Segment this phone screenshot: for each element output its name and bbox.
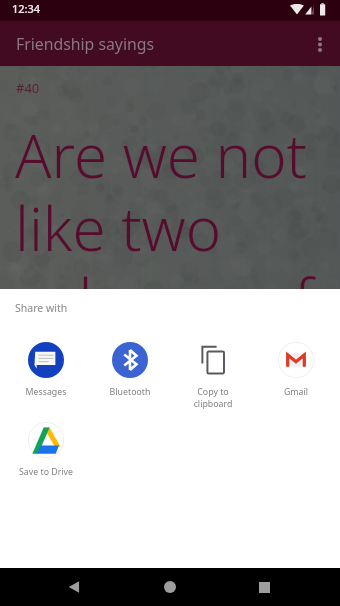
staticText: Share with	[15, 301, 68, 315]
staticText: Bluetooth	[101, 386, 159, 398]
button[interactable]: Save to Drive	[4, 422, 87, 478]
button[interactable]: Back	[56, 569, 92, 605]
button[interactable]: Home	[152, 569, 188, 605]
button[interactable]: Gmail	[254, 342, 337, 398]
button[interactable]: More options	[300, 24, 340, 64]
button[interactable]: Recent apps	[246, 569, 282, 605]
button[interactable]: Messages	[4, 342, 88, 398]
staticText: 12:34	[12, 1, 41, 16]
staticText: Friendship sayings	[16, 33, 155, 55]
staticText: Messages	[17, 386, 75, 398]
staticText: Save to Drive	[17, 466, 75, 478]
staticText: Copy to clipboard	[184, 386, 242, 410]
staticText: #40	[16, 79, 40, 97]
staticText: Gmail	[267, 386, 325, 398]
button[interactable]: Bluetooth	[88, 342, 171, 398]
staticText: Are we not like two volumes of one book?	[15, 114, 330, 412]
button[interactable]: Copy to clipboard	[171, 342, 254, 410]
